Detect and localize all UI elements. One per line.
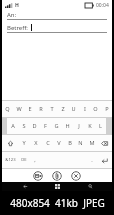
button[interactable]: Close (71, 171, 81, 181)
button[interactable]: L (95, 118, 106, 134)
button[interactable]: A (7, 118, 18, 134)
staticText: A (11, 122, 15, 130)
button[interactable]: V (53, 135, 64, 151)
staticText: R (39, 105, 43, 113)
staticText: H (65, 122, 70, 130)
button[interactable]: T (46, 101, 57, 117)
button[interactable]: P (101, 101, 112, 117)
button[interactable]: J (73, 118, 84, 134)
staticText: Betreff: (7, 24, 28, 32)
button[interactable]: M (86, 135, 97, 151)
button[interactable]: Enter (97, 152, 112, 168)
staticText: T (50, 105, 54, 113)
button[interactable]: R (35, 101, 46, 117)
button[interactable]: &123 (2, 152, 18, 168)
staticText: B (68, 139, 72, 147)
button[interactable]: X (30, 135, 42, 151)
staticText: S (22, 122, 26, 130)
button[interactable]: F (40, 118, 51, 134)
button[interactable]: I (79, 101, 90, 117)
staticText: 480x854 41kb JPEG (10, 196, 105, 210)
staticText: O (93, 105, 98, 113)
staticText: An: (7, 11, 17, 19)
button[interactable]: An: (7, 10, 107, 20)
button[interactable]: Y (18, 135, 30, 151)
staticText: , (34, 156, 36, 164)
button[interactable]: S (18, 118, 29, 134)
button[interactable]: . (87, 152, 97, 168)
staticText: DE (21, 157, 27, 163)
staticText: . (91, 156, 93, 164)
button[interactable]: O (90, 101, 101, 117)
staticText: P (105, 105, 109, 113)
button[interactable]: Search (80, 182, 100, 191)
button[interactable]: DE (18, 152, 30, 168)
button[interactable]: Shift (2, 135, 18, 151)
button[interactable]: N (75, 135, 86, 151)
staticText: J (78, 122, 80, 130)
staticText: I (84, 105, 86, 113)
button[interactable]: Z (57, 101, 68, 117)
button[interactable]: B (64, 135, 75, 151)
staticText: G (54, 122, 59, 130)
staticText: Q (5, 105, 10, 113)
button[interactable]: Betreff: (7, 23, 107, 33)
button[interactable]: , (30, 152, 40, 168)
staticText: E (28, 105, 32, 113)
staticText: U (71, 105, 76, 113)
button[interactable]: H (62, 118, 73, 134)
button[interactable]: Send (33, 171, 43, 181)
staticText: F (44, 122, 47, 130)
staticText: X (34, 139, 38, 147)
button[interactable]: Q (2, 101, 13, 117)
staticText: M (89, 139, 95, 147)
staticText: D (32, 122, 37, 130)
button[interactable]: C (42, 135, 53, 151)
staticText: W (16, 105, 22, 113)
button[interactable]: E (24, 101, 35, 117)
staticText: L (99, 122, 102, 130)
staticText: Z (61, 105, 65, 113)
button[interactable]: Start (47, 182, 67, 191)
button[interactable]: W (13, 101, 24, 117)
button[interactable]: G (51, 118, 62, 134)
staticText: N (78, 139, 83, 147)
button[interactable]: U (68, 101, 79, 117)
staticText: &123 (5, 157, 16, 163)
button[interactable]: Attach (52, 171, 62, 181)
button[interactable]: Backspace (97, 135, 112, 151)
staticText: 00:04 (96, 2, 109, 9)
staticText: Y (22, 139, 26, 147)
button[interactable]: K (84, 118, 95, 134)
staticText: V (57, 139, 61, 147)
button[interactable]: Back (15, 182, 35, 191)
button[interactable]: D (29, 118, 40, 134)
staticText: C (46, 139, 50, 147)
staticText: H (15, 2, 19, 9)
staticText: K (88, 122, 92, 130)
